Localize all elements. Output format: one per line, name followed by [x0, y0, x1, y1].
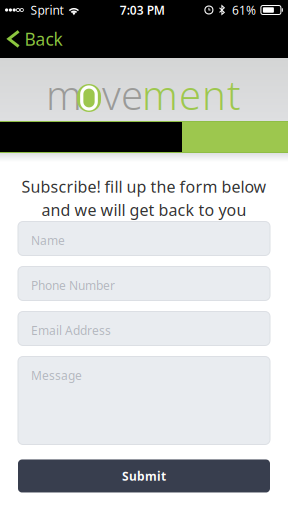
button[interactable]: Back	[0, 20, 72, 58]
button[interactable]: Phone Number	[18, 266, 270, 300]
button[interactable]: Submit	[18, 459, 270, 492]
staticText: Submit	[122, 468, 166, 484]
staticText: Subscribe! fill up the form below	[21, 176, 266, 197]
staticText: Sprint	[30, 2, 63, 18]
staticText: Back	[24, 27, 62, 50]
staticText: Phone Number	[31, 277, 115, 293]
staticText: m	[46, 68, 82, 121]
button[interactable]: Email Address	[18, 311, 270, 345]
staticText: Email Address	[31, 322, 111, 338]
button[interactable]: Name	[18, 221, 270, 255]
staticText: Name	[31, 232, 65, 248]
staticText: 61%	[232, 2, 256, 18]
staticText: ve	[102, 68, 143, 121]
staticText: and we will get back to you	[41, 199, 246, 220]
button[interactable]: Message	[18, 356, 270, 444]
staticText: 7:03 PM	[120, 2, 165, 18]
staticText: ment	[142, 68, 241, 121]
staticText: Message	[31, 367, 82, 383]
